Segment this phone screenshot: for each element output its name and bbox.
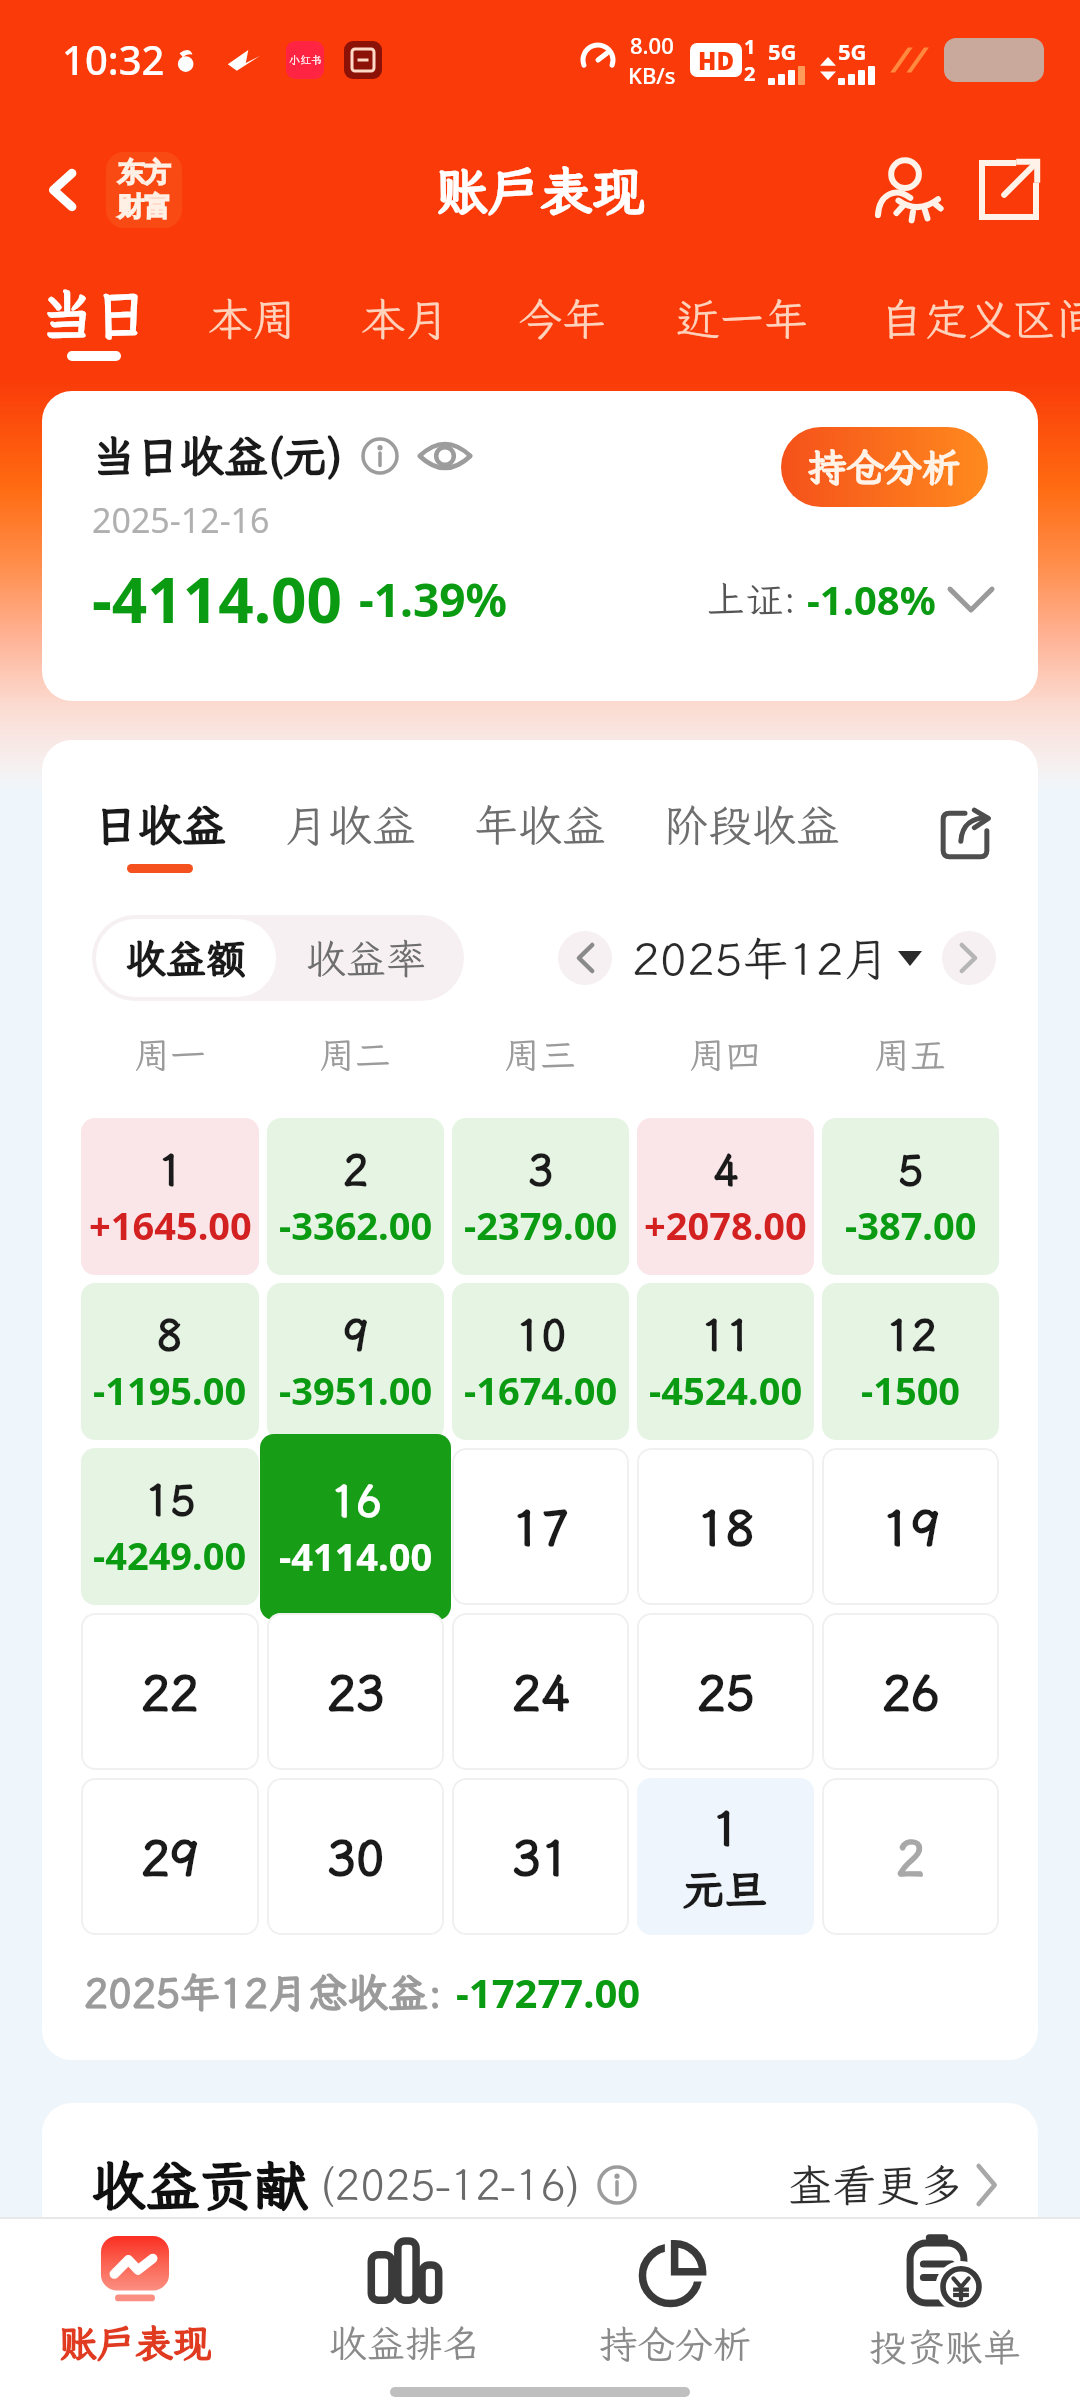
staticText: 日收益 <box>94 796 226 854</box>
button[interactable]: 日收益 <box>94 796 226 873</box>
staticText: -1674.00 <box>464 1364 618 1416</box>
staticText: 2025年12月 <box>632 928 890 989</box>
button[interactable]: 自定义区间 <box>880 260 1080 378</box>
button[interactable]: 2025年12月 <box>632 928 922 989</box>
staticText: 近一年 <box>676 290 808 348</box>
button[interactable]: 持仓分析 <box>781 427 988 507</box>
staticText: 账户表现 <box>59 2318 212 2368</box>
button[interactable]: 2 <box>267 1118 444 1275</box>
button[interactable]: East Money logo <box>106 152 182 228</box>
staticText: -3951.00 <box>279 1364 433 1416</box>
button[interactable]: 上证: <box>707 572 992 626</box>
staticText: 自定义区间 <box>880 290 1080 348</box>
staticText: 5G <box>838 36 867 66</box>
staticText: KB/s <box>628 60 676 90</box>
button[interactable]: 投资账单 <box>810 2219 1080 2384</box>
staticText: 当日收益(元) <box>92 427 343 485</box>
button[interactable]: 持仓分析 <box>540 2219 810 2384</box>
button[interactable]: 收益率 <box>276 919 456 997</box>
button[interactable]: 3 <box>452 1118 629 1275</box>
button[interactable]: 今年 <box>518 260 606 378</box>
button[interactable]: 2 <box>822 1778 999 1935</box>
button[interactable]: 18 <box>637 1448 814 1605</box>
button[interactable]: 本周 <box>208 260 296 378</box>
staticText: HD <box>698 44 734 77</box>
button[interactable]: 17 <box>452 1448 629 1605</box>
button[interactable]: 阶段收益 <box>664 796 840 873</box>
staticText: 4 <box>713 1142 739 1197</box>
button[interactable]: 年收益 <box>474 796 606 873</box>
staticText: +2078.00 <box>644 1199 807 1251</box>
staticText: 3 <box>528 1142 554 1197</box>
staticText: 周二 <box>319 1031 392 1078</box>
staticText: 26 <box>882 1660 940 1723</box>
staticText: -4524.00 <box>649 1364 803 1416</box>
button[interactable]: 收益排名 <box>270 2219 540 2384</box>
staticText: 18 <box>697 1495 755 1558</box>
staticText: 东方 <box>117 156 171 190</box>
staticText: 1 <box>158 1142 184 1197</box>
staticText: 30 <box>327 1825 385 1888</box>
staticText: 本月 <box>361 290 449 348</box>
button[interactable]: 26 <box>822 1613 999 1770</box>
staticText: -387.00 <box>845 1199 977 1251</box>
button[interactable]: Toggle visibility <box>417 428 473 484</box>
staticText: 2 <box>744 60 756 87</box>
button[interactable]: 当日 <box>40 260 148 378</box>
button[interactable]: 23 <box>267 1613 444 1770</box>
staticText: +1645.00 <box>89 1199 252 1251</box>
button[interactable]: 16 <box>260 1434 451 1620</box>
button[interactable]: 30 <box>267 1778 444 1935</box>
button[interactable]: 近一年 <box>676 260 808 378</box>
staticText: 2025-12-16 <box>92 497 270 543</box>
button[interactable]: 1 <box>81 1118 259 1275</box>
button[interactable]: 收益额 <box>96 919 276 997</box>
staticText: 收益率 <box>306 932 426 985</box>
button[interactable]: Info <box>359 435 401 477</box>
staticText: 年收益 <box>474 796 606 854</box>
staticText: 2025年12月总收益: <box>84 1966 456 2019</box>
staticText: 月收益 <box>284 796 416 854</box>
staticText: 8.00 <box>630 30 674 60</box>
staticText: 财富 <box>117 190 171 224</box>
staticText: 23 <box>327 1660 385 1723</box>
button[interactable]: Back <box>32 158 96 222</box>
staticText: 31 <box>512 1825 570 1888</box>
staticText: 上证: <box>707 574 797 624</box>
staticText: 阶段收益 <box>664 796 840 854</box>
button[interactable]: 25 <box>637 1613 814 1770</box>
button[interactable]: 5 <box>822 1118 999 1275</box>
button[interactable]: 10 <box>452 1283 629 1440</box>
button[interactable]: 24 <box>452 1613 629 1770</box>
button[interactable]: 15 <box>81 1448 259 1605</box>
staticText: 16 <box>331 1473 382 1528</box>
button[interactable]: 11 <box>637 1283 814 1440</box>
button[interactable]: 1 <box>637 1778 814 1935</box>
button[interactable]: Next month <box>942 931 996 985</box>
button[interactable]: 9 <box>267 1283 444 1440</box>
button[interactable]: 账户表现 <box>0 2219 270 2384</box>
button[interactable]: 8 <box>81 1283 259 1440</box>
staticText: -1500 <box>861 1364 961 1416</box>
button[interactable]: 19 <box>822 1448 999 1605</box>
button[interactable]: 查看更多 <box>788 2156 998 2214</box>
staticText: 本周 <box>208 290 296 348</box>
button[interactable]: 22 <box>81 1613 259 1770</box>
button[interactable]: 月收益 <box>284 796 416 873</box>
staticText: 19 <box>882 1495 940 1558</box>
staticText: 1 <box>744 33 756 60</box>
button[interactable]: 本月 <box>361 260 449 378</box>
button[interactable]: Customer service <box>866 147 952 233</box>
button[interactable]: Previous month <box>558 931 612 985</box>
button[interactable]: Share <box>932 802 998 868</box>
staticText: 今年 <box>518 290 606 348</box>
button[interactable]: Share <box>966 147 1052 233</box>
staticText: 当日 <box>40 278 148 349</box>
staticText: -1.08% <box>807 572 936 626</box>
button[interactable]: 31 <box>452 1778 629 1935</box>
staticText: 周四 <box>689 1031 762 1078</box>
button[interactable]: 4 <box>637 1118 814 1275</box>
button[interactable]: 12 <box>822 1283 999 1440</box>
staticText: -4114.00 <box>92 557 343 641</box>
button[interactable]: 29 <box>81 1778 259 1935</box>
